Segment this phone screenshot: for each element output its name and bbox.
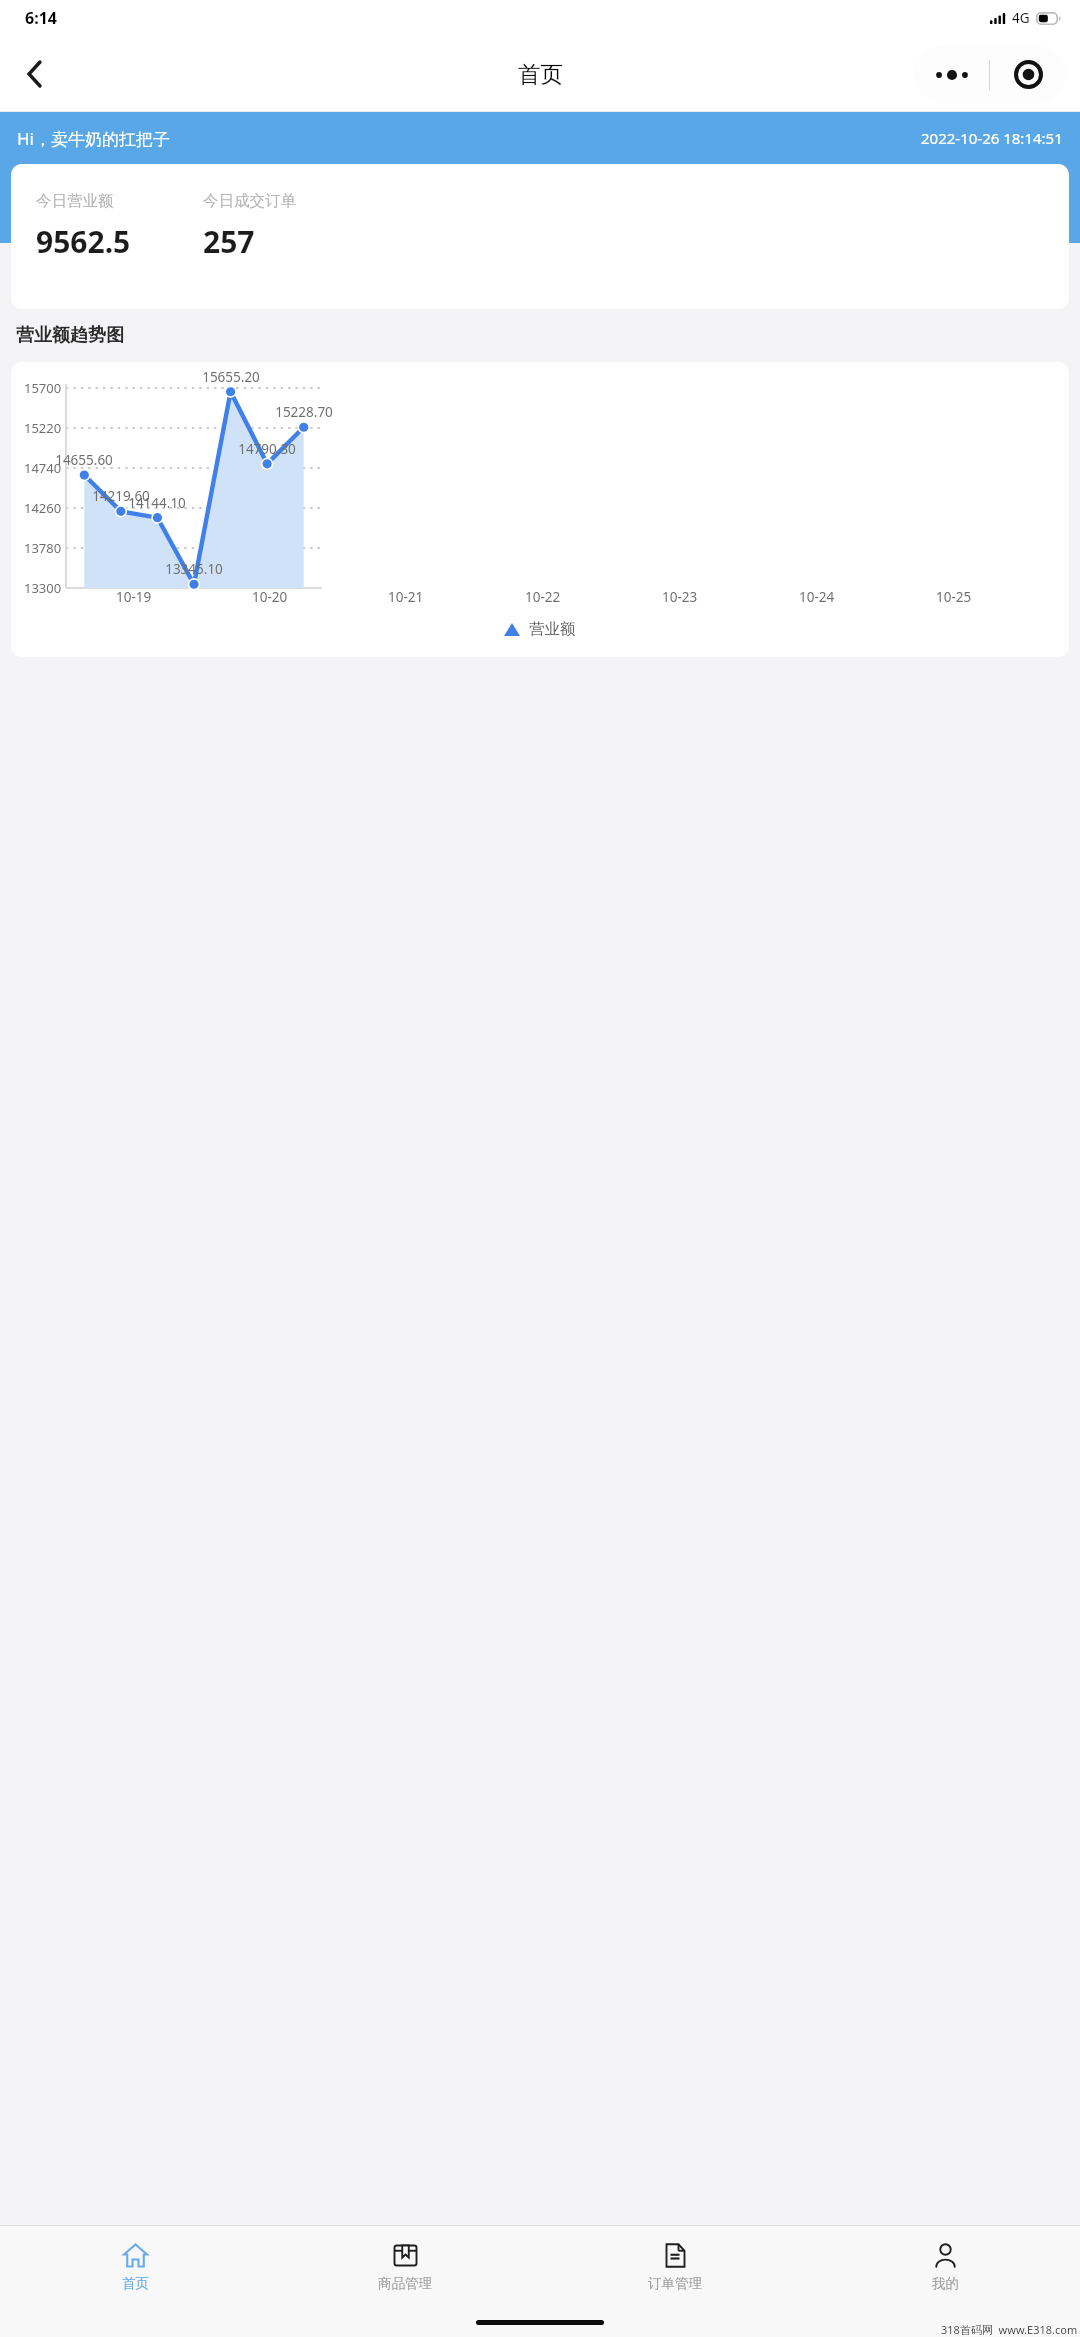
staticText: 10-22 [525,588,561,606]
staticText: 今日营业额 [36,191,114,211]
staticText: 10-19 [116,588,152,606]
staticText: 14260 [24,499,62,517]
button[interactable]: 今日营业额 [11,164,1069,309]
button[interactable]: Mini program menu [990,45,1066,104]
staticText: 10-20 [252,588,288,606]
staticText: 订单管理 [648,2275,702,2292]
staticText: 10-21 [388,588,424,606]
button[interactable]: 我的 [810,2226,1080,2308]
staticText: 4G [1012,9,1030,27]
staticText: 首页 [122,2275,149,2292]
staticText: 10-23 [662,588,698,606]
staticText: 15700 [24,379,62,397]
staticText: 257 [203,221,255,262]
staticText: 10-25 [936,588,972,606]
staticText: 6:14 [25,7,57,29]
button[interactable]: More options [914,45,989,104]
staticText: Hi，卖牛奶的扛把子 [17,127,170,150]
button[interactable]: Back [6,46,62,102]
staticText: 15228.70 [275,403,333,421]
staticText: 13300 [24,579,62,597]
button[interactable]: 订单管理 [540,2226,810,2308]
staticText: 营业额 [529,619,576,639]
staticText: 今日成交订单 [203,191,296,211]
staticText: 14655.60 [55,451,113,469]
staticText: 14219.60 [92,487,150,505]
staticText: 我的 [932,2275,959,2292]
staticText: 15220 [24,419,62,437]
staticText: 9562.5 [36,221,131,262]
staticText: 首页 [518,60,563,88]
staticText: 商品管理 [378,2275,432,2292]
staticText: 15655.20 [202,368,260,386]
staticText: 营业额趋势图 [16,324,124,347]
staticText: 13780 [24,539,62,557]
button[interactable]: 商品管理 [270,2226,540,2308]
staticText: 14144.10 [128,494,186,512]
button[interactable]: 首页 [0,2226,270,2308]
staticText: 14790.30 [238,440,296,458]
staticText: 10-24 [799,588,835,606]
staticText: 14740 [24,459,62,477]
staticText: 318首码网 www.E318.com [941,2322,1078,2337]
staticText: 13345.10 [165,560,223,578]
staticText: 2022-10-26 18:14:51 [921,128,1063,148]
